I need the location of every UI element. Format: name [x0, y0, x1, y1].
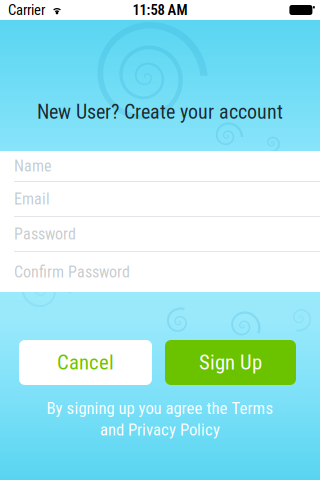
button[interactable]: Email — [0, 182, 320, 216]
button[interactable]: Name — [0, 151, 320, 181]
button[interactable]: Password — [0, 217, 320, 251]
staticText: and Privacy Policy — [100, 420, 220, 439]
button[interactable]: Confirm Password — [0, 252, 320, 292]
staticText: Name — [14, 157, 52, 175]
staticText: Carrier — [8, 1, 45, 19]
staticText: Confirm Password — [14, 263, 130, 281]
button[interactable]: Sign Up — [165, 340, 296, 385]
button[interactable]: By signing up you agree the Terms — [0, 402, 320, 436]
button[interactable]: Cancel — [19, 340, 152, 385]
staticText: 11:58 AM — [132, 1, 187, 19]
staticText: New User? Create your account — [37, 100, 283, 124]
staticText: By signing up you agree the Terms — [46, 398, 273, 418]
staticText: Sign Up — [199, 350, 262, 375]
staticText: Email — [14, 190, 50, 208]
staticText: Password — [14, 225, 76, 243]
staticText: Cancel — [57, 350, 114, 375]
